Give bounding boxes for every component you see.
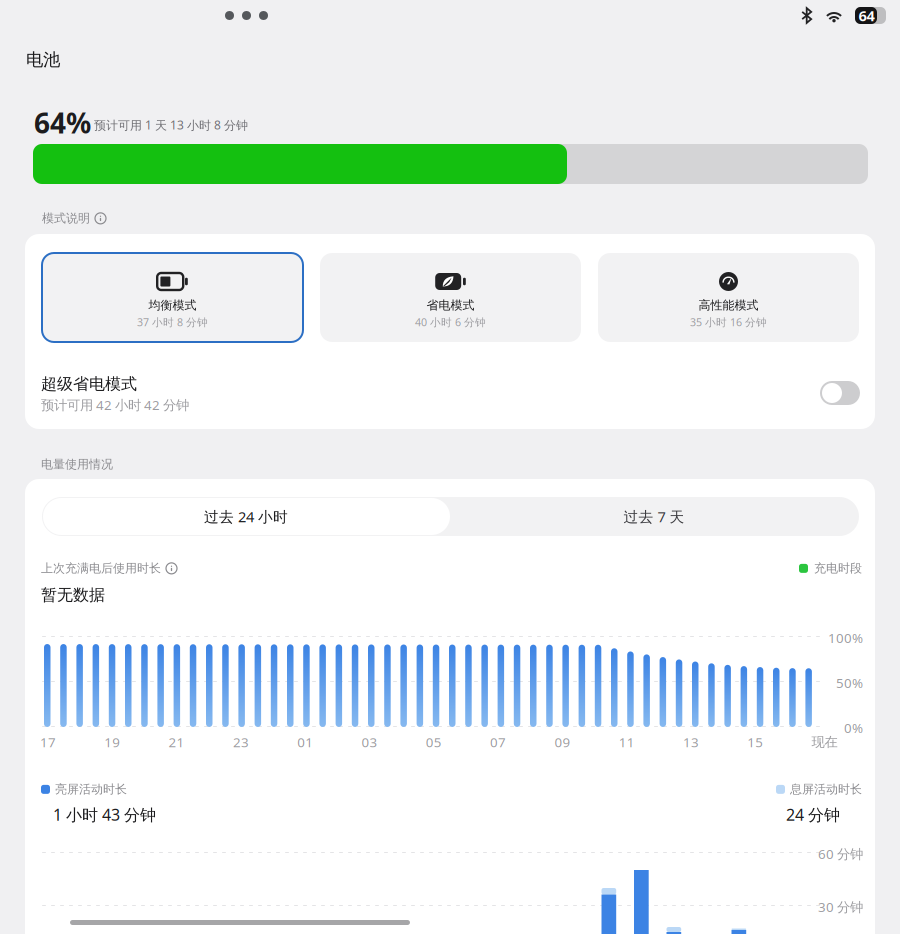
button[interactable]: 过去 24 小时 — [42, 497, 450, 536]
button[interactable]: 超级省电模式 — [40, 374, 860, 418]
staticText: 过去 24 小时 — [204, 507, 288, 526]
staticText: 上次充满电后使用时长 — [41, 561, 161, 576]
staticText: 05 — [426, 733, 442, 751]
staticText: 24 分钟 — [786, 804, 840, 825]
staticText: 03 — [361, 733, 377, 751]
button[interactable]: 均衡模式 — [42, 253, 303, 342]
staticText: 15 — [747, 733, 763, 751]
staticText: 30 分钟 — [818, 898, 863, 916]
staticText: 息屏活动时长 — [790, 782, 862, 797]
staticText: 预计可用 42 小时 42 分钟 — [41, 396, 189, 414]
staticText: 预计可用 1 天 13 小时 8 分钟 — [94, 117, 248, 133]
staticText: 17 — [40, 733, 56, 751]
staticText: 37 小时 8 分钟 — [137, 315, 208, 329]
staticText: 09 — [554, 733, 570, 751]
staticText: 40 小时 6 分钟 — [415, 315, 486, 329]
staticText: 64% — [34, 104, 91, 141]
staticText: 21 — [169, 733, 185, 751]
staticText: 电池 — [26, 49, 60, 70]
staticText: 现在 — [812, 734, 838, 750]
staticText: 暂无数据 — [41, 585, 105, 605]
staticText: 07 — [490, 733, 506, 751]
staticText: 64 — [858, 6, 874, 25]
staticText: 11 — [619, 733, 635, 751]
staticText: 均衡模式 — [148, 298, 196, 313]
staticText: 19 — [104, 733, 120, 751]
staticText: 0% — [844, 719, 863, 737]
staticText: 50% — [836, 674, 863, 692]
staticText: 23 — [233, 733, 249, 751]
staticText: 高性能模式 — [698, 298, 758, 313]
staticText: 35 小时 16 分钟 — [690, 315, 767, 329]
staticText: 电量使用情况 — [41, 457, 113, 472]
staticText: 13 — [683, 733, 699, 751]
staticText: 充电时段 — [814, 561, 862, 576]
staticText: 1 小时 43 分钟 — [53, 804, 156, 825]
staticText: 模式说明 — [42, 211, 90, 226]
button[interactable]: 省电模式 — [320, 253, 581, 342]
staticText: 过去 7 天 — [623, 507, 684, 526]
staticText: 超级省电模式 — [41, 374, 137, 394]
staticText: 100% — [828, 629, 863, 647]
staticText: 亮屏活动时长 — [55, 782, 127, 797]
staticText: 省电模式 — [426, 298, 474, 313]
staticText: 01 — [297, 733, 313, 751]
button[interactable]: 高性能模式 — [598, 253, 859, 342]
button[interactable]: 过去 7 天 — [450, 497, 858, 536]
staticText: 60 分钟 — [818, 845, 863, 863]
